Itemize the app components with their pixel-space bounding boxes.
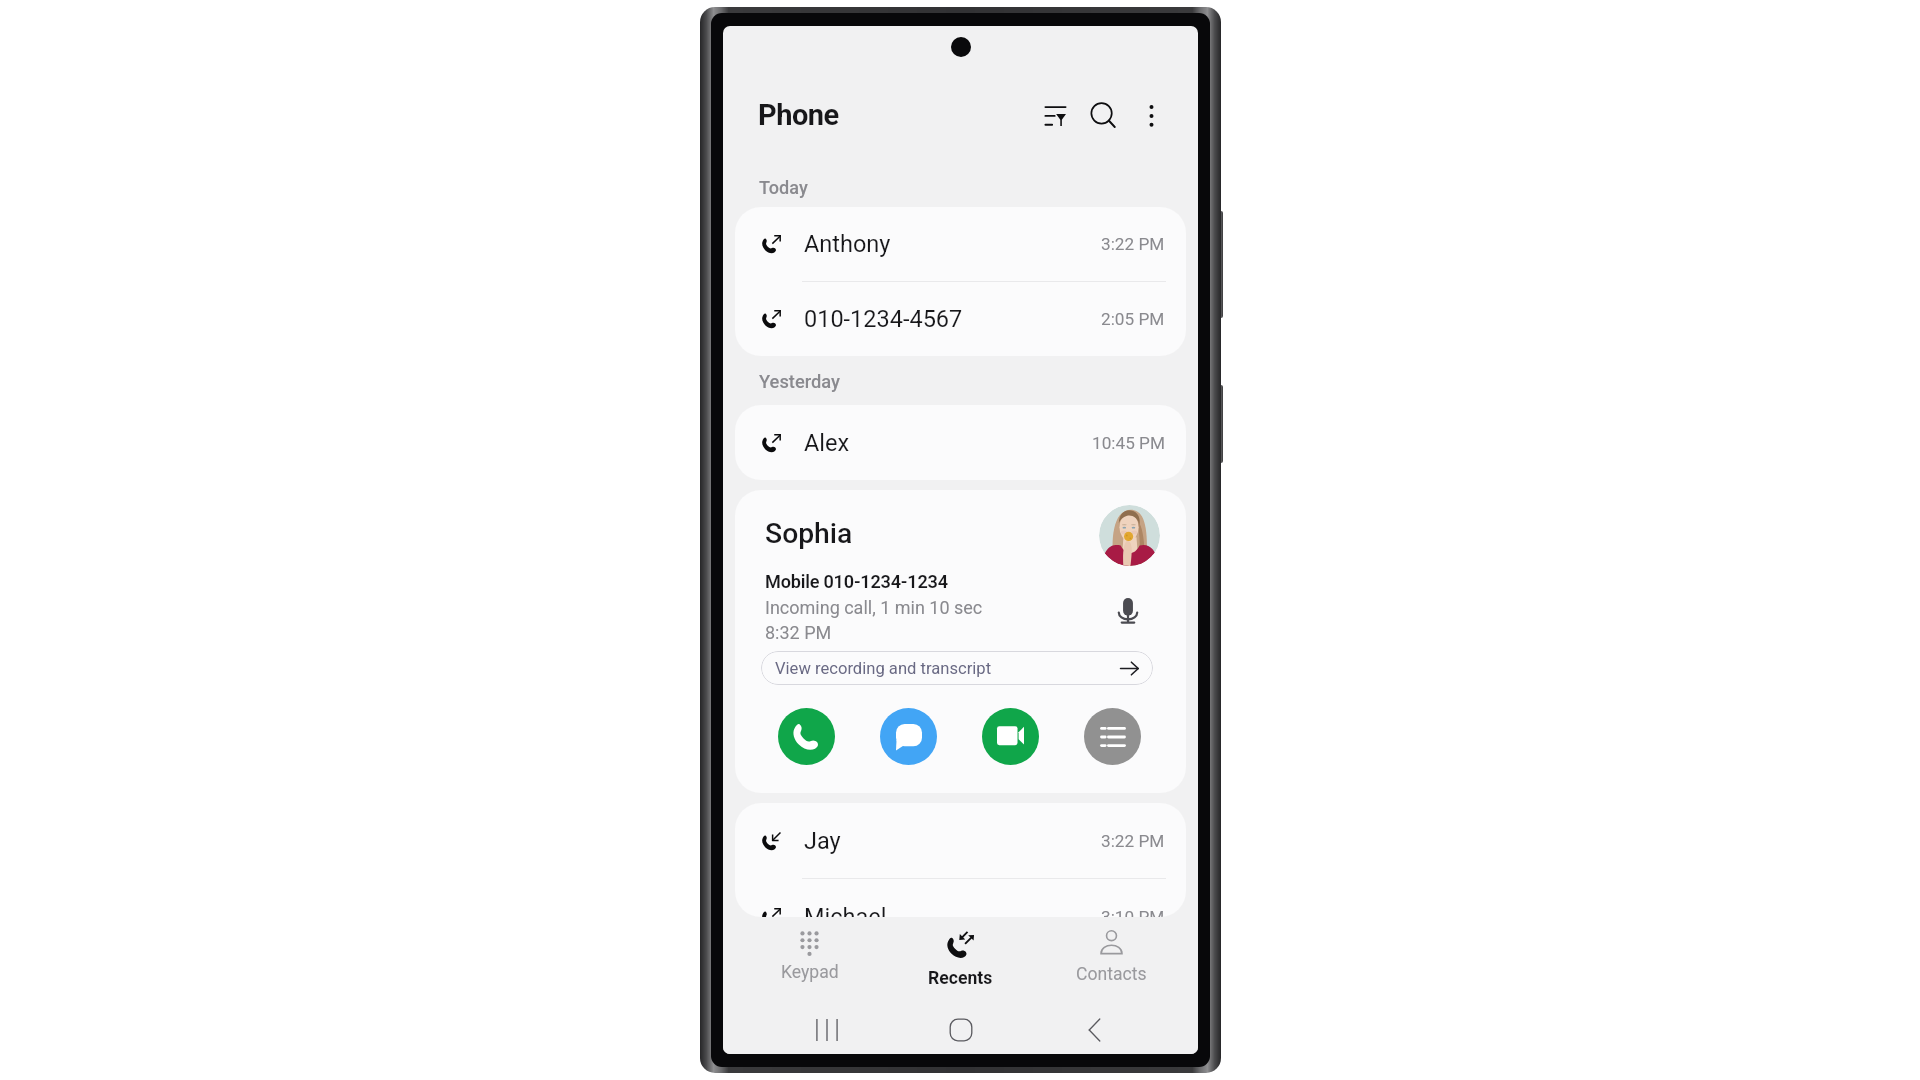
button[interactable]: Call details xyxy=(1084,708,1141,765)
staticText: Michael xyxy=(804,903,1101,917)
staticText: Yesterday xyxy=(759,371,841,392)
staticText: View recording and transcript xyxy=(775,659,1120,678)
staticText: 3:22 PM xyxy=(1101,831,1165,851)
button[interactable]: Message xyxy=(880,708,937,765)
staticText: 10:45 PM xyxy=(1092,433,1165,453)
staticText: Mobile 010-1234-1234 xyxy=(765,571,948,592)
button[interactable]: Anthony xyxy=(735,207,1186,281)
button[interactable]: Video call xyxy=(982,708,1039,765)
staticText: 8:32 PM xyxy=(765,622,832,643)
staticText: Contacts xyxy=(1076,964,1147,985)
staticText: Sophia xyxy=(765,517,853,550)
staticText: Jay xyxy=(804,827,1101,855)
staticText: Anthony xyxy=(804,230,1101,258)
button[interactable]: Keypad xyxy=(734,917,885,994)
button[interactable]: Voice recording xyxy=(1108,591,1148,631)
staticText: Phone xyxy=(758,98,839,132)
button[interactable]: Home xyxy=(894,1006,1028,1054)
button[interactable]: Call xyxy=(778,708,835,765)
button[interactable]: View recording and transcript xyxy=(761,651,1153,685)
staticText: Recents xyxy=(928,968,993,989)
staticText: 3:22 PM xyxy=(1101,234,1165,254)
button[interactable]: Michael xyxy=(735,879,1186,917)
staticText: 3:10 PM xyxy=(1101,907,1165,917)
staticText: 010-1234-4567 xyxy=(804,305,1101,333)
staticText: 2:05 PM xyxy=(1101,309,1165,329)
button[interactable]: Sort xyxy=(1031,91,1079,139)
button[interactable]: 010-1234-4567 xyxy=(735,282,1186,356)
button[interactable]: Back xyxy=(1028,1006,1162,1054)
button[interactable]: Recents xyxy=(885,917,1036,994)
button[interactable]: Recent apps xyxy=(759,1006,894,1054)
staticText: Keypad xyxy=(781,962,839,983)
button[interactable]: Search xyxy=(1079,91,1127,139)
staticText: Today xyxy=(759,177,808,198)
button[interactable]: More options xyxy=(1127,91,1175,139)
button[interactable]: Jay xyxy=(735,803,1186,878)
button[interactable]: Contacts xyxy=(1036,917,1187,994)
staticText: Alex xyxy=(804,429,1092,457)
button[interactable]: Alex xyxy=(735,405,1186,480)
staticText: Incoming call, 1 min 10 sec xyxy=(765,597,983,618)
